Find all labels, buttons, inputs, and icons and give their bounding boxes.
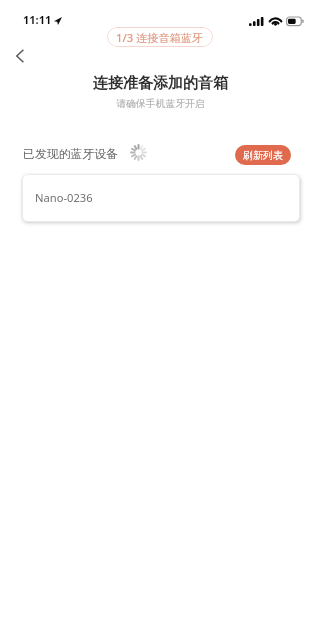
staticText: Nano-0236 [35,190,93,205]
staticText: 刷新列表 [243,149,283,162]
staticText: 请确保手机蓝牙开启 [116,98,205,110]
staticText: 11:11 [23,12,52,27]
staticText: 已发现的蓝牙设备 [23,147,119,162]
staticText: 连接准备添加的音箱 [93,74,228,93]
button[interactable]: Nano-0236 [22,174,300,222]
button[interactable]: 1/3 连接音箱蓝牙 [107,27,213,47]
staticText: 1/3 连接音箱蓝牙 [116,30,204,45]
button[interactable]: 刷新列表 [235,145,291,165]
button[interactable]: Back [4,40,36,72]
